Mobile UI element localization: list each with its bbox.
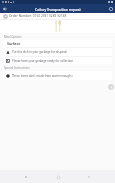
button[interactable]: Help [108,84,114,90]
staticText: These items don't made from warm enough … [12,74,73,78]
button[interactable]: Back [0,4,10,13]
staticText: Special Instructions [4,66,30,70]
button[interactable]: These items don't made from warm enough … [3,71,112,80]
staticText: Meal Options [4,35,22,39]
button[interactable]: Recent apps [84,172,94,182]
button[interactable]: Home [53,172,63,182]
button[interactable]: Put this dish in your garbage for dispos… [3,48,112,56]
staticText: Surface [7,41,21,46]
button[interactable]: Please have your garbage ready for colle… [3,57,112,64]
staticText: Please have your garbage ready for colle… [12,59,73,63]
staticText: Put this dish in your garbage for dispos… [12,50,67,54]
button[interactable]: Back [21,172,31,182]
staticText: Order Number: 0192 2931 0283 92138 [9,14,67,18]
button[interactable]: Order Number: 0192 2931 0283 92138 [0,13,115,19]
button[interactable]: Help [106,4,115,13]
staticText: Cutlery Transposition request [35,7,81,11]
